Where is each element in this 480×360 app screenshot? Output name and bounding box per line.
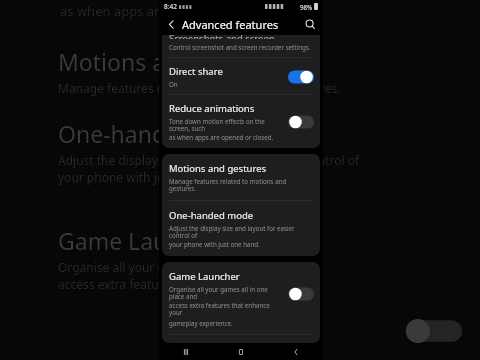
staticText: Adjust the display size and layout for e… — [58, 152, 360, 168]
staticText: 8:42 — [164, 2, 177, 11]
staticText: access extra features that enhance your — [58, 276, 283, 292]
button[interactable]: Toggle off — [288, 114, 314, 130]
staticText: Adjust the display size and layout for e… — [169, 224, 314, 240]
staticText: Game Launch — [58, 225, 207, 256]
button[interactable]: Direct share — [162, 58, 320, 94]
button[interactable]: Search — [303, 17, 318, 32]
button[interactable]: Toggle off — [288, 286, 314, 302]
staticText: your phone with just one hand. — [58, 169, 235, 185]
staticText: Organise all your games all in one place… — [58, 259, 307, 275]
staticText: One-handed — [58, 118, 194, 149]
staticText: One-handed mode — [169, 209, 254, 222]
staticText: gameplay experience. — [169, 319, 233, 327]
staticText: Tone down motion effects on the screen, … — [169, 117, 282, 133]
button[interactable]: Motions and gestures — [162, 154, 320, 200]
button[interactable]: Screenshots and screen recorder — [162, 35, 320, 57]
button[interactable]: Recents — [159, 343, 213, 360]
button[interactable]: Back — [164, 17, 179, 32]
button[interactable]: Toggle on — [288, 69, 314, 85]
button[interactable]: Game Launcher — [162, 262, 320, 319]
staticText: Reduce animations — [169, 102, 255, 115]
button[interactable]: Reduce animations — [162, 95, 320, 148]
staticText: Manage features related to motions and g… — [169, 177, 314, 193]
staticText: Screenshots and screen recorder — [169, 35, 314, 39]
staticText: as when apps are opened or closed. — [169, 133, 274, 141]
staticText: Game Launcher — [169, 270, 240, 283]
staticText: Motions and — [58, 46, 194, 77]
staticText: Direct share — [169, 65, 223, 78]
staticText: as when apps are — [60, 2, 167, 20]
staticText: access extra features that enhance your — [169, 301, 282, 317]
staticText: Advanced features — [182, 17, 303, 32]
staticText: your phone with just one hand. — [169, 240, 260, 248]
staticText: Motions and gestures — [169, 162, 267, 175]
staticText: Control screenshot and screen recorder s… — [169, 43, 311, 51]
staticText: Organise all your games all in one place… — [169, 285, 282, 301]
button[interactable]: Back — [268, 343, 323, 360]
staticText: 98% — [300, 3, 313, 11]
button[interactable]: One-handed mode — [162, 201, 320, 256]
button[interactable]: Dual Messenger — [162, 335, 320, 343]
staticText: Manage features related to motions and g… — [58, 80, 341, 96]
staticText: On — [169, 80, 178, 88]
button[interactable]: Home — [213, 343, 268, 360]
